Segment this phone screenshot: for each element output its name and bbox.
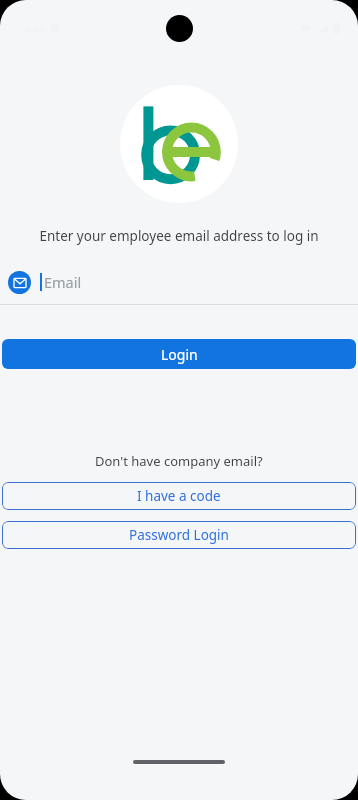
- staticText: Login: [161, 345, 198, 364]
- button[interactable]: I have a code: [2, 482, 356, 510]
- staticText: Email: [44, 272, 82, 292]
- staticText: Don't have company email?: [95, 452, 263, 470]
- other: Email: [8, 271, 31, 294]
- staticText: Enter your employee email address to log…: [39, 227, 319, 245]
- staticText: I have a code: [137, 487, 221, 505]
- button[interactable]: Password Login: [2, 521, 356, 549]
- button[interactable]: Email: [0, 262, 358, 302]
- button[interactable]: Login: [2, 339, 356, 369]
- staticText: Password Login: [129, 526, 229, 544]
